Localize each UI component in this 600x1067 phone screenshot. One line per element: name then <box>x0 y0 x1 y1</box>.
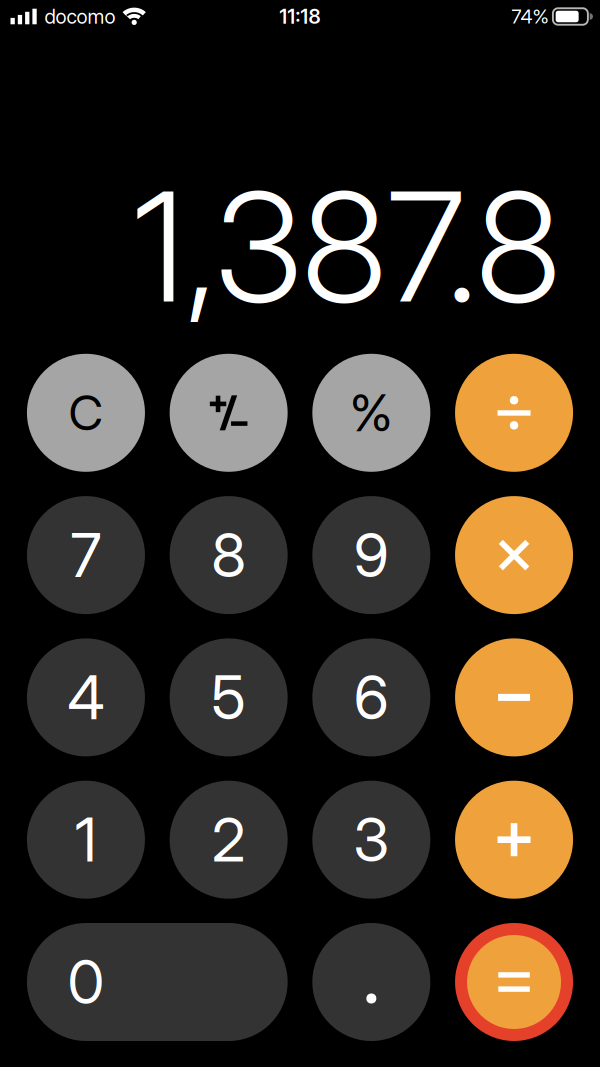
button[interactable]: C <box>27 354 145 472</box>
staticText: 9 <box>354 519 389 591</box>
button[interactable]: 1 <box>27 781 145 899</box>
staticText: 8 <box>211 519 246 591</box>
button[interactable]: 0 <box>27 923 288 1041</box>
button[interactable]: % <box>312 354 430 472</box>
button[interactable]: 2 <box>170 781 288 899</box>
staticText: docomo <box>44 4 115 29</box>
staticText: 0 <box>67 946 104 1018</box>
button[interactable]: Decimal point <box>312 923 430 1041</box>
staticText: C <box>68 384 103 442</box>
button[interactable]: 3 <box>312 781 430 899</box>
button[interactable]: Plus minus <box>170 354 288 472</box>
button[interactable]: 4 <box>27 638 145 756</box>
button[interactable]: 5 <box>170 638 288 756</box>
staticText: 1 <box>75 803 97 876</box>
staticText: % <box>350 382 393 443</box>
staticText: 5 <box>211 661 246 734</box>
staticText: 2 <box>212 803 246 876</box>
staticText: 11:18 <box>279 4 320 29</box>
button[interactable]: Subtract <box>455 638 573 756</box>
button[interactable]: Multiply <box>455 496 573 614</box>
staticText: 7 <box>70 519 101 591</box>
button[interactable]: Add <box>455 781 573 899</box>
button[interactable]: 8 <box>170 496 288 614</box>
button[interactable]: 9 <box>312 496 430 614</box>
button[interactable]: Divide <box>455 354 573 472</box>
button[interactable]: Equals <box>455 923 573 1041</box>
button[interactable]: 6 <box>312 638 430 756</box>
staticText: 6 <box>354 661 389 734</box>
button[interactable]: 7 <box>27 496 145 614</box>
staticText: 4 <box>67 661 104 734</box>
staticText: 1,387.8 <box>133 155 561 338</box>
staticText: 74% <box>511 5 548 28</box>
staticText: 3 <box>353 803 389 876</box>
